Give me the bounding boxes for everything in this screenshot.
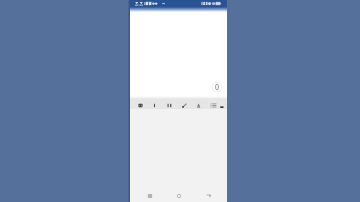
button[interactable]: Text colour bbox=[192, 99, 204, 109]
button[interactable]: More options bbox=[217, 99, 227, 109]
button[interactable]: Back bbox=[202, 189, 216, 202]
button[interactable]: Recent apps bbox=[143, 189, 157, 202]
button[interactable]: Home bbox=[172, 189, 186, 202]
button[interactable]: Bold bbox=[148, 99, 160, 109]
button[interactable]: Italic bbox=[163, 99, 175, 109]
button[interactable]: Text style bbox=[134, 99, 146, 109]
button[interactable]: Bulleted list bbox=[207, 99, 219, 109]
button[interactable]: Voice input bbox=[210, 80, 224, 94]
button[interactable]: Highlight bbox=[178, 99, 190, 109]
